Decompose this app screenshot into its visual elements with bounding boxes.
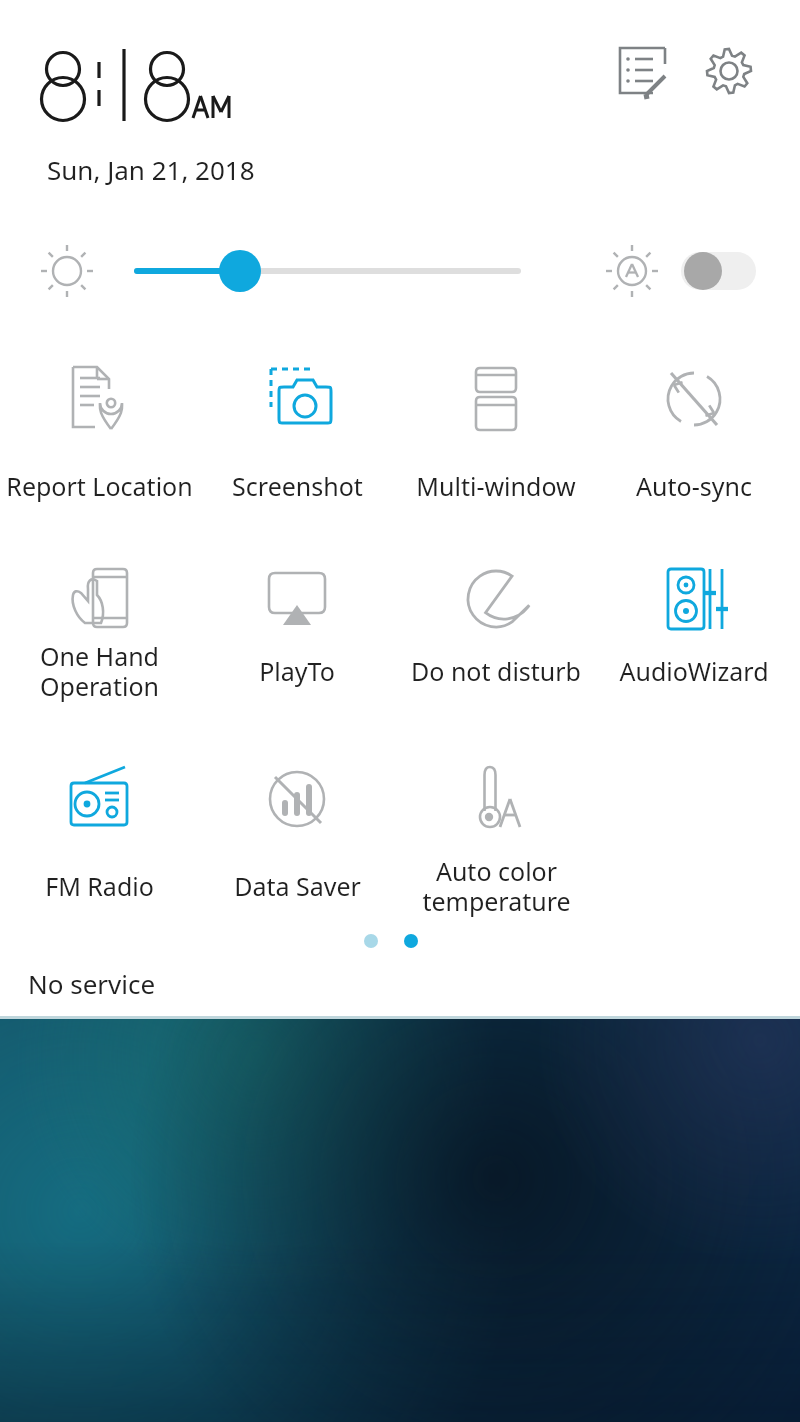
button[interactable]: Automatic brightness bbox=[604, 240, 760, 302]
button[interactable]: Report Location bbox=[0, 345, 198, 495]
staticText: One Hand Operation bbox=[40, 639, 159, 704]
staticText: Screenshot bbox=[232, 469, 363, 503]
button[interactable]: AudioWizard bbox=[595, 545, 793, 695]
button[interactable]: Data Saver bbox=[198, 745, 396, 895]
button[interactable]: Brightness bbox=[120, 240, 540, 302]
staticText: Multi-window bbox=[416, 469, 576, 503]
button[interactable]: Edit quick settings bbox=[608, 38, 674, 104]
button[interactable]: Brightness level bbox=[40, 240, 98, 298]
staticText: FM Radio bbox=[45, 869, 154, 903]
button[interactable]: FM Radio bbox=[0, 745, 198, 895]
button[interactable]: Multi-window bbox=[397, 345, 595, 495]
staticText: No service bbox=[28, 966, 156, 1001]
staticText: Auto color temperature bbox=[422, 854, 571, 919]
button[interactable]: Auto-sync bbox=[595, 345, 793, 495]
staticText: AudioWizard bbox=[619, 654, 769, 688]
button[interactable]: Settings bbox=[697, 38, 763, 104]
staticText: Do not disturb bbox=[411, 654, 581, 688]
button[interactable]: Clock and date bbox=[30, 40, 260, 185]
staticText: Auto-sync bbox=[636, 469, 752, 503]
staticText: Data Saver bbox=[234, 869, 361, 903]
button[interactable]: Do not disturb bbox=[397, 545, 595, 695]
button[interactable]: PlayTo bbox=[198, 545, 396, 695]
button[interactable]: Page indicator bbox=[352, 922, 430, 960]
button[interactable]: Screenshot bbox=[198, 345, 396, 495]
staticText: Sun, Jan 21, 2018 bbox=[47, 152, 255, 187]
button[interactable]: Auto color temperature bbox=[397, 745, 595, 895]
button[interactable]: One Hand Operation bbox=[0, 545, 198, 695]
staticText: Report Location bbox=[6, 469, 193, 503]
staticText: PlayTo bbox=[259, 654, 335, 688]
